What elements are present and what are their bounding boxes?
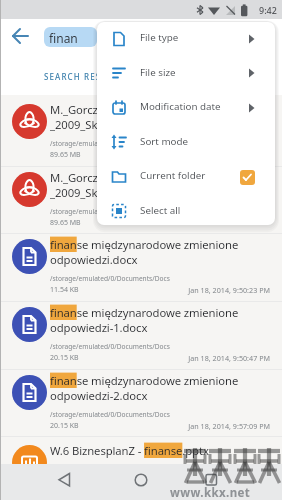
button[interactable]: [189, 464, 233, 500]
button[interactable]: [97, 125, 275, 159]
button[interactable]: [119, 464, 163, 500]
button[interactable]: [97, 91, 275, 125]
button[interactable]: [0, 302, 282, 369]
button[interactable]: [240, 170, 255, 185]
staticText: /storage/emulated/0/Documents/Docs: [50, 342, 170, 351]
staticText: odpowiedzi-2.docx: [50, 388, 148, 403]
staticText: /storage/emulated/0/Documents/Docs: [50, 274, 170, 283]
staticText: 11.54 KB: [50, 285, 79, 295]
button[interactable]: [12, 28, 30, 46]
button[interactable]: [97, 22, 275, 56]
button[interactable]: [12, 307, 47, 342]
staticText: odpowiedzi-1.docx: [50, 320, 148, 335]
staticText: /storage/emulated/0/Documents: [50, 139, 153, 148]
button[interactable]: [0, 370, 282, 437]
button[interactable]: [44, 27, 97, 47]
staticText: /storage/emulated/0/Documents/Docs: [50, 480, 170, 489]
button[interactable]: [12, 104, 47, 139]
button[interactable]: [0, 234, 282, 301]
button[interactable]: [12, 375, 47, 410]
button[interactable]: [0, 99, 282, 166]
button[interactable]: [97, 56, 275, 90]
staticText: W.6 BiznesplanZ - finanse.pptx: [50, 443, 209, 458]
staticText: Jan 18, 2014, 9:57:09 PM: [0, 421, 270, 431]
staticText: 20.15 KB: [50, 353, 79, 363]
staticText: finanse międzynarodowe zmienione: [50, 237, 239, 252]
staticText: Jan 18, 2014, 9:50:47 PM: [0, 353, 270, 363]
staticText: finanse międzynarodowe zmienione: [50, 373, 239, 388]
staticText: odpowiedzi.docx: [50, 252, 138, 267]
button[interactable]: [0, 167, 282, 234]
staticText: 9:42: [259, 4, 277, 16]
staticText: /storage/emulated/0/Documents: [50, 207, 153, 216]
button[interactable]: [12, 445, 47, 480]
staticText: Current folder: [140, 169, 206, 182]
staticText: Jan 18, 2014, 9:50:23 PM: [0, 285, 270, 295]
button[interactable]: [12, 239, 47, 274]
staticText: M._Gorczynska_-_Finan: [50, 170, 170, 185]
staticText: _2009_Skrypt_finanse: [50, 117, 162, 132]
button[interactable]: [0, 440, 282, 500]
staticText: 20.15 KB: [50, 421, 79, 431]
button[interactable]: [12, 172, 47, 207]
staticText: M._Gorczynska_-_Finan: [50, 102, 170, 117]
staticText: /storage/emulated/0/Documents/Docs: [50, 410, 170, 419]
button[interactable]: [48, 464, 92, 500]
button[interactable]: [97, 160, 275, 194]
staticText: File type: [140, 31, 179, 44]
staticText: File size: [140, 66, 176, 79]
staticText: finan: [49, 30, 78, 46]
staticText: Select all: [140, 204, 181, 217]
staticText: _2009_Skrypt_finanse: [50, 185, 162, 200]
staticText: www.kkx.net: [170, 485, 251, 500]
button[interactable]: [97, 194, 275, 228]
staticText: Sort mode: [140, 135, 189, 148]
staticText: finanse międzynarodowe zmienione: [50, 305, 239, 320]
staticText: 89.65 MB: [50, 150, 81, 160]
staticText: SEARCH RESULTS: [44, 71, 125, 82]
staticText: Modification date: [140, 100, 221, 113]
staticText: 89.65 MB: [50, 218, 81, 228]
